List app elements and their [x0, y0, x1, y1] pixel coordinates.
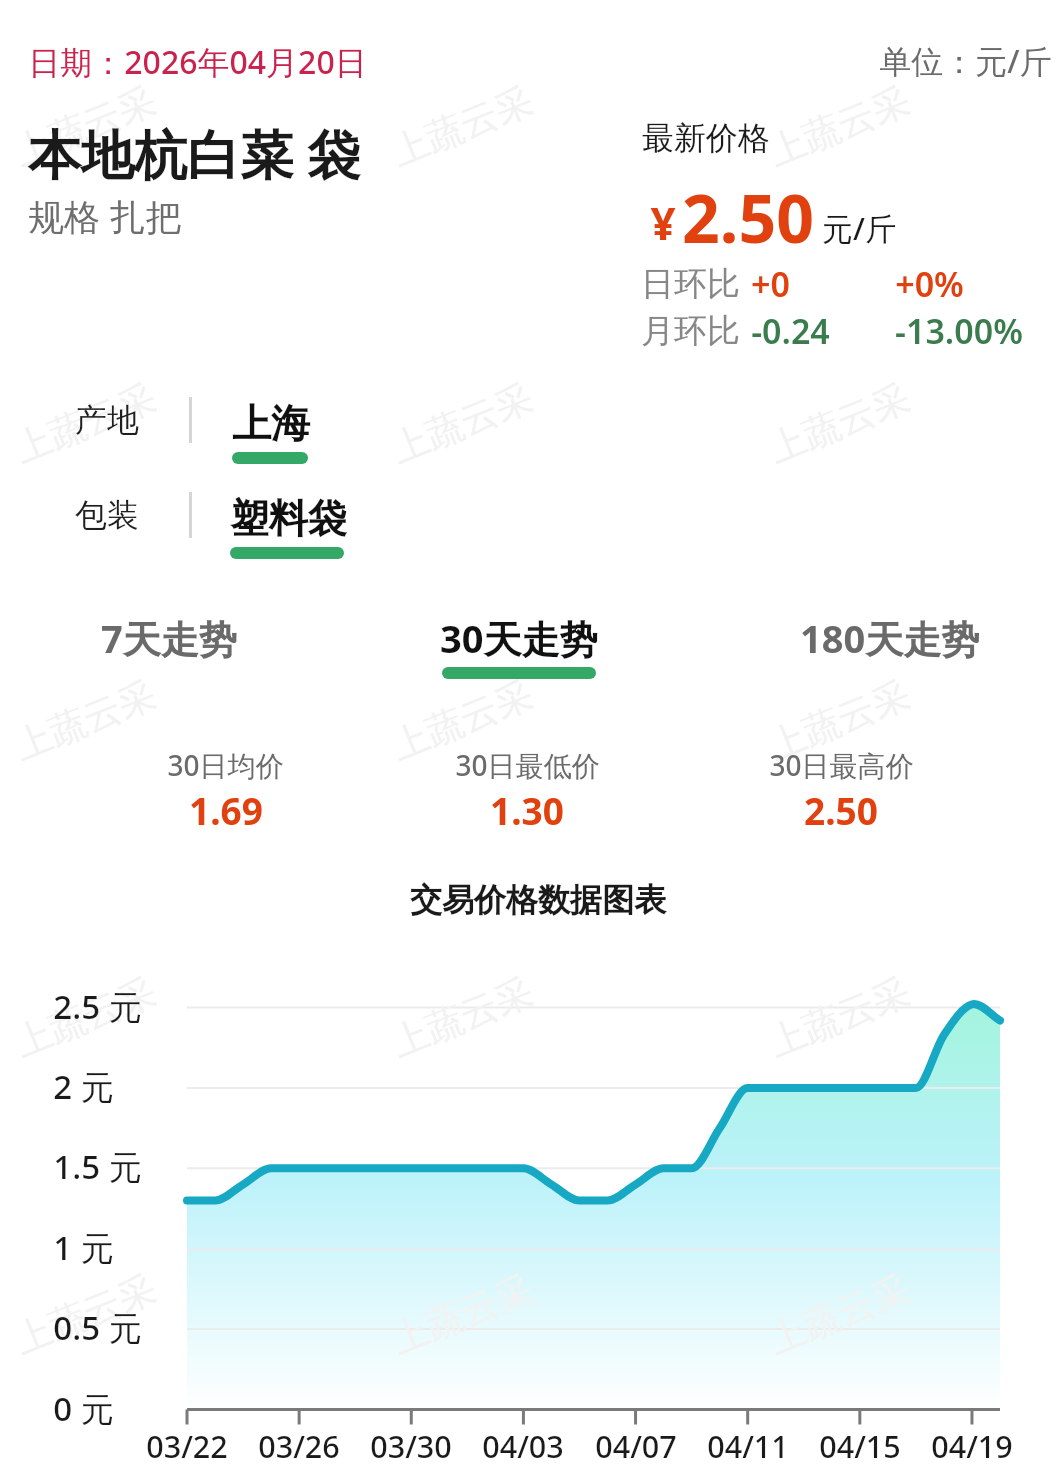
- staticText: 1.30: [490, 785, 564, 835]
- staticText: 上蔬云采: [385, 1265, 540, 1364]
- staticText: 日环比: [641, 263, 740, 305]
- staticText: 月环比: [641, 310, 740, 352]
- staticText: 元/斤: [822, 207, 896, 249]
- staticText: 04/11: [707, 1425, 789, 1466]
- staticText: 1.69: [189, 785, 263, 835]
- button[interactable]: 30天走势: [412, 593, 626, 693]
- button[interactable]: 塑料袋: [230, 470, 394, 570]
- staticText: 30天走势: [440, 612, 598, 664]
- staticText: 03/26: [258, 1425, 340, 1466]
- staticText: 上蔬云采: [385, 77, 540, 176]
- staticText: 04/03: [482, 1425, 564, 1466]
- staticText: 上蔬云采: [8, 374, 163, 473]
- staticText: 30日最低价: [455, 746, 600, 784]
- staticText: 日期：2026年04月20日: [28, 40, 367, 84]
- staticText: 03/30: [370, 1425, 452, 1466]
- staticText: 单位：元/斤: [879, 39, 1052, 83]
- staticText: 包装: [75, 495, 139, 535]
- staticText: 产地: [75, 400, 139, 440]
- staticText: 上蔬云采: [8, 77, 163, 176]
- staticText: 塑料袋: [230, 494, 347, 543]
- staticText: 30日均价: [167, 746, 284, 784]
- staticText: 上蔬云采: [762, 671, 917, 770]
- staticText: 1 元: [53, 1225, 114, 1270]
- staticText: ¥: [650, 193, 676, 253]
- staticText: 最新价格: [642, 118, 770, 158]
- staticText: 本地杭白菜 袋: [28, 117, 360, 189]
- staticText: +0: [751, 261, 790, 307]
- staticText: 上蔬云采: [8, 671, 163, 770]
- staticText: 上蔬云采: [385, 968, 540, 1067]
- staticText: 交易价格数据图表: [410, 880, 666, 920]
- staticText: -0.24: [751, 308, 830, 354]
- staticText: 0.5 元: [53, 1305, 142, 1350]
- staticText: 30日最高价: [769, 746, 914, 784]
- staticText: 上蔬云采: [762, 968, 917, 1067]
- staticText: 上蔬云采: [762, 77, 917, 176]
- staticText: 04/15: [819, 1425, 901, 1466]
- button[interactable]: 7天走势: [71, 593, 267, 693]
- staticText: 03/22: [146, 1425, 228, 1466]
- button[interactable]: 180天走势: [773, 593, 1007, 693]
- staticText: 上蔬云采: [8, 1265, 163, 1364]
- staticText: 2.5 元: [53, 984, 142, 1029]
- staticText: 上蔬云采: [762, 1265, 917, 1364]
- staticText: +0%: [895, 261, 964, 307]
- button[interactable]: 上海: [232, 375, 358, 475]
- staticText: 上蔬云采: [762, 374, 917, 473]
- staticText: 上海: [232, 399, 310, 448]
- staticText: 2.50: [682, 172, 814, 262]
- staticText: 规格 扎把: [28, 192, 182, 241]
- staticText: 1.5 元: [53, 1144, 142, 1189]
- staticText: 2 元: [53, 1064, 114, 1109]
- staticText: 04/07: [595, 1425, 677, 1466]
- staticText: 2.50: [804, 785, 878, 835]
- staticText: -13.00%: [895, 308, 1023, 354]
- staticText: 0 元: [53, 1386, 114, 1431]
- staticText: 上蔬云采: [8, 968, 163, 1067]
- staticText: 上蔬云采: [385, 671, 540, 770]
- staticText: 04/19: [931, 1425, 1013, 1466]
- staticText: 180天走势: [800, 612, 980, 664]
- staticText: 上蔬云采: [385, 374, 540, 473]
- staticText: 7天走势: [101, 612, 237, 664]
